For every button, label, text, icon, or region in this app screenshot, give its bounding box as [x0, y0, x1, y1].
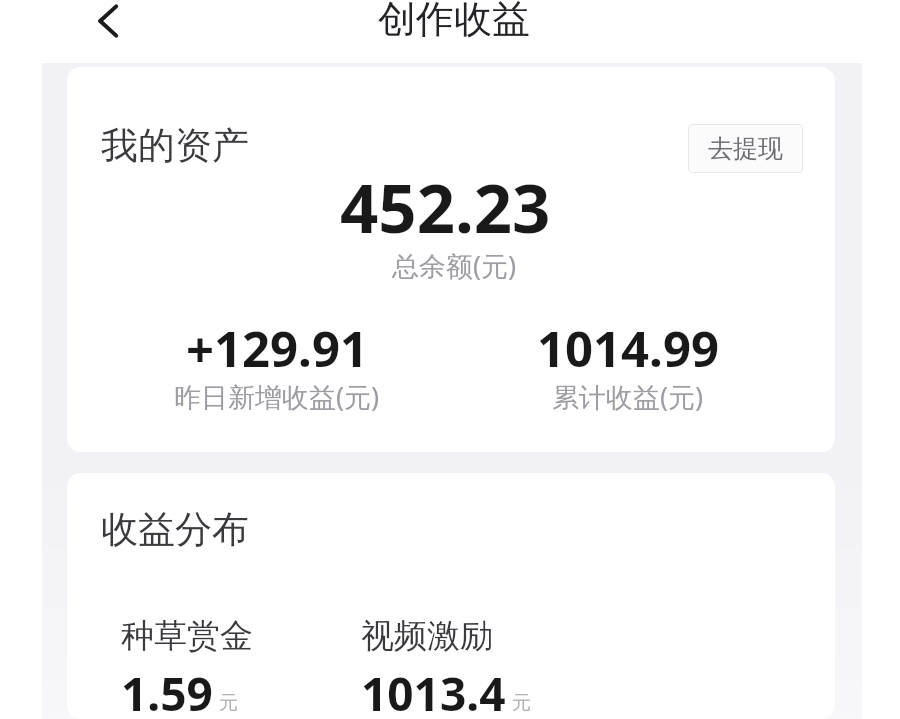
- staticText: 元: [219, 691, 238, 715]
- staticText: 创作收益: [378, 0, 530, 43]
- button[interactable]: Back: [74, 0, 140, 52]
- staticText: 总余额(元): [392, 247, 517, 284]
- staticText: +129.91: [186, 315, 368, 382]
- button[interactable]: 视频激励: [361, 615, 601, 719]
- staticText: 累计收益(元): [552, 378, 704, 415]
- staticText: 我的资产: [101, 122, 249, 169]
- button[interactable]: 1014.99: [457, 315, 799, 419]
- staticText: 视频激励: [361, 615, 493, 657]
- button[interactable]: +129.91: [106, 315, 448, 419]
- button[interactable]: 种草赏金: [121, 615, 361, 719]
- staticText: 元: [512, 691, 531, 715]
- staticText: 昨日新增收益(元): [174, 378, 380, 415]
- staticText: 1.59: [121, 662, 213, 719]
- staticText: 种草赏金: [121, 615, 253, 657]
- staticText: 1013.4: [361, 662, 506, 719]
- staticText: 1014.99: [537, 315, 719, 382]
- staticText: 452.23: [340, 161, 551, 252]
- button[interactable]: 去提现: [688, 124, 803, 173]
- staticText: 去提现: [708, 133, 783, 164]
- staticText: 收益分布: [101, 506, 249, 553]
